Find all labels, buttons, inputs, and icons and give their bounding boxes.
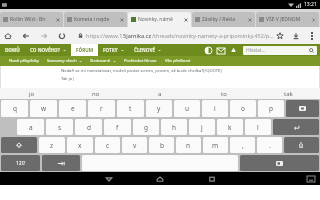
button[interactable]: . xyxy=(257,137,282,153)
button[interactable]: b xyxy=(149,137,174,153)
staticText: Nové příspěvky xyxy=(9,58,39,64)
button[interactable]: Reload xyxy=(58,32,66,40)
staticText: Seznamy všech xyxy=(47,58,77,64)
button[interactable]: q xyxy=(1,100,28,117)
button[interactable]: Messages xyxy=(217,48,225,54)
button[interactable]: Seznamy všech xyxy=(47,56,82,66)
button[interactable]: Zásilky / Rekla xyxy=(192,12,255,27)
button[interactable]: l xyxy=(245,119,271,135)
button[interactable]: , xyxy=(230,137,255,153)
button[interactable]: c xyxy=(95,137,120,153)
button[interactable]: y xyxy=(146,100,172,117)
button[interactable]: Sledované xyxy=(90,56,116,66)
staticText: 13:21 xyxy=(304,1,317,8)
button[interactable]: Prohledat fórum xyxy=(124,56,157,66)
button[interactable]: f xyxy=(104,119,131,135)
button[interactable]: ČLENOVÉ xyxy=(134,44,161,56)
button[interactable]: Alerts xyxy=(230,47,237,54)
button[interactable]: jo xyxy=(0,88,64,99)
staticText: Novinky, námě xyxy=(138,16,183,23)
button[interactable]: VŠE V JEDNOM xyxy=(256,12,319,27)
staticText: q xyxy=(13,104,17,113)
button[interactable]: j xyxy=(189,119,215,135)
button[interactable]: Downloads xyxy=(292,32,300,40)
button[interactable]: s xyxy=(46,119,73,135)
button[interactable]: g xyxy=(133,119,159,135)
button[interactable]: DOMŮ xyxy=(5,44,20,56)
button[interactable]: h xyxy=(161,119,187,135)
staticText: e xyxy=(71,104,75,113)
button[interactable]: k xyxy=(217,119,243,135)
button[interactable]: Kometa i nejde xyxy=(64,12,127,27)
button[interactable]: FÓRUM xyxy=(76,44,93,56)
button[interactable]: Enter xyxy=(273,119,319,135)
button[interactable]: Novinky, námě xyxy=(128,12,191,27)
staticText: 12!? xyxy=(16,160,26,167)
button[interactable]: n xyxy=(176,137,201,153)
button[interactable]: w xyxy=(30,100,57,117)
button[interactable]: no xyxy=(64,88,128,99)
button[interactable]: New tab xyxy=(303,14,315,23)
button[interactable]: Nové příspěvky xyxy=(9,56,39,66)
button[interactable]: i xyxy=(202,100,228,117)
staticText: h xyxy=(172,123,177,132)
button[interactable]: ů xyxy=(284,137,319,153)
staticText: z xyxy=(50,141,54,150)
button[interactable]: Home xyxy=(4,32,12,40)
button[interactable]: FOTKY xyxy=(103,44,124,56)
button[interactable]: to xyxy=(192,88,256,99)
button[interactable]: Recent apps xyxy=(208,175,216,183)
staticText: , xyxy=(242,141,244,150)
button[interactable]: t xyxy=(117,100,144,117)
staticText: b xyxy=(160,141,164,150)
button[interactable]: p xyxy=(258,100,284,117)
button[interactable]: m xyxy=(203,137,228,153)
button[interactable]: e xyxy=(59,100,86,117)
button[interactable]: z xyxy=(39,137,65,153)
button[interactable]: a xyxy=(17,119,44,135)
button[interactable]: Rollin Wild - Bir xyxy=(0,12,63,27)
staticText: tak xyxy=(284,90,293,98)
staticText: m xyxy=(212,141,219,150)
staticText: . xyxy=(269,141,271,150)
button[interactable]: 12!? xyxy=(1,155,40,171)
button[interactable]: Hide keyboard xyxy=(240,155,319,171)
button[interactable]: Theme xyxy=(205,47,212,54)
staticText: Prohledat fórum xyxy=(124,58,157,64)
button[interactable]: o xyxy=(230,100,256,117)
button[interactable]: Vše přečtené xyxy=(165,56,191,66)
staticText: DOMŮ xyxy=(5,47,20,53)
button[interactable]: v xyxy=(122,137,147,153)
staticText: Kometa i nejde xyxy=(74,16,119,23)
button[interactable]: a xyxy=(128,88,192,99)
staticText: j xyxy=(201,123,203,132)
button[interactable]: x xyxy=(67,137,93,153)
button[interactable]: More options xyxy=(308,32,316,40)
staticText: g xyxy=(144,123,148,132)
button[interactable]: Hledat... xyxy=(246,46,314,55)
staticText: c xyxy=(106,141,110,150)
button[interactable]: Switch keyboard xyxy=(307,176,315,182)
staticText: l xyxy=(257,123,259,132)
button[interactable]: Backspace xyxy=(286,100,319,117)
staticText: no xyxy=(92,90,100,98)
button[interactable]: d xyxy=(75,119,102,135)
button[interactable]: Back xyxy=(22,32,30,40)
button[interactable]: u xyxy=(174,100,200,117)
button[interactable]: r xyxy=(88,100,115,117)
button[interactable]: Home xyxy=(156,175,164,183)
button[interactable]: Tab xyxy=(42,155,80,171)
staticText: 5jarnika.cz xyxy=(123,32,152,39)
button[interactable]: tak xyxy=(256,88,320,99)
staticText: u xyxy=(185,104,190,113)
button[interactable]: CO NOVÉHO? xyxy=(30,44,66,56)
button[interactable]: Back xyxy=(105,175,113,183)
button[interactable]: Bookmark xyxy=(276,32,284,40)
button[interactable]: Nedaří se mi nainstalovat, můžeš poslat … xyxy=(58,66,258,88)
staticText: Tak jo| xyxy=(61,76,75,82)
button[interactable]: Forward xyxy=(40,32,48,40)
staticText: Nedaří se mi nainstalovat, můžeš poslat … xyxy=(61,68,222,74)
staticText: f xyxy=(116,123,119,132)
button[interactable]: Shift xyxy=(1,137,37,153)
